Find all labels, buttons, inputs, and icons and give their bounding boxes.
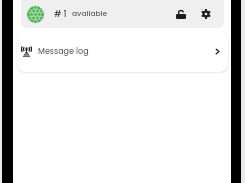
staticText: available	[72, 8, 108, 18]
staticText: Message log	[38, 46, 89, 57]
button[interactable]: Channel unlocked	[171, 4, 191, 24]
staticText: # 1	[54, 8, 67, 20]
button[interactable]: Settings	[196, 4, 216, 24]
button[interactable]: Message log	[17, 31, 228, 72]
